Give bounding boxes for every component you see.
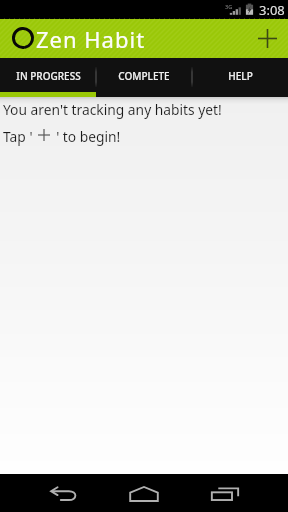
staticText: IN PROGRESS	[16, 69, 81, 83]
button[interactable]: HELP	[192, 58, 288, 97]
staticText: HELP	[228, 69, 253, 83]
button[interactable]: Back	[36, 475, 90, 512]
staticText: 3G	[225, 3, 233, 10]
staticText: COMPLETE	[118, 69, 170, 83]
button[interactable]: COMPLETE	[96, 58, 192, 97]
staticText: Tap '	[3, 127, 37, 146]
staticText: ' to begin!	[49, 127, 121, 146]
staticText: 3:08	[259, 1, 285, 19]
button[interactable]: Home	[117, 475, 171, 512]
button[interactable]: Recents	[198, 475, 252, 512]
button[interactable]: Add habit	[246, 19, 288, 58]
staticText: Zen Habit	[36, 24, 146, 54]
button[interactable]: IN PROGRESS	[0, 58, 96, 97]
staticText: You aren't tracking any habits yet!	[3, 100, 222, 119]
